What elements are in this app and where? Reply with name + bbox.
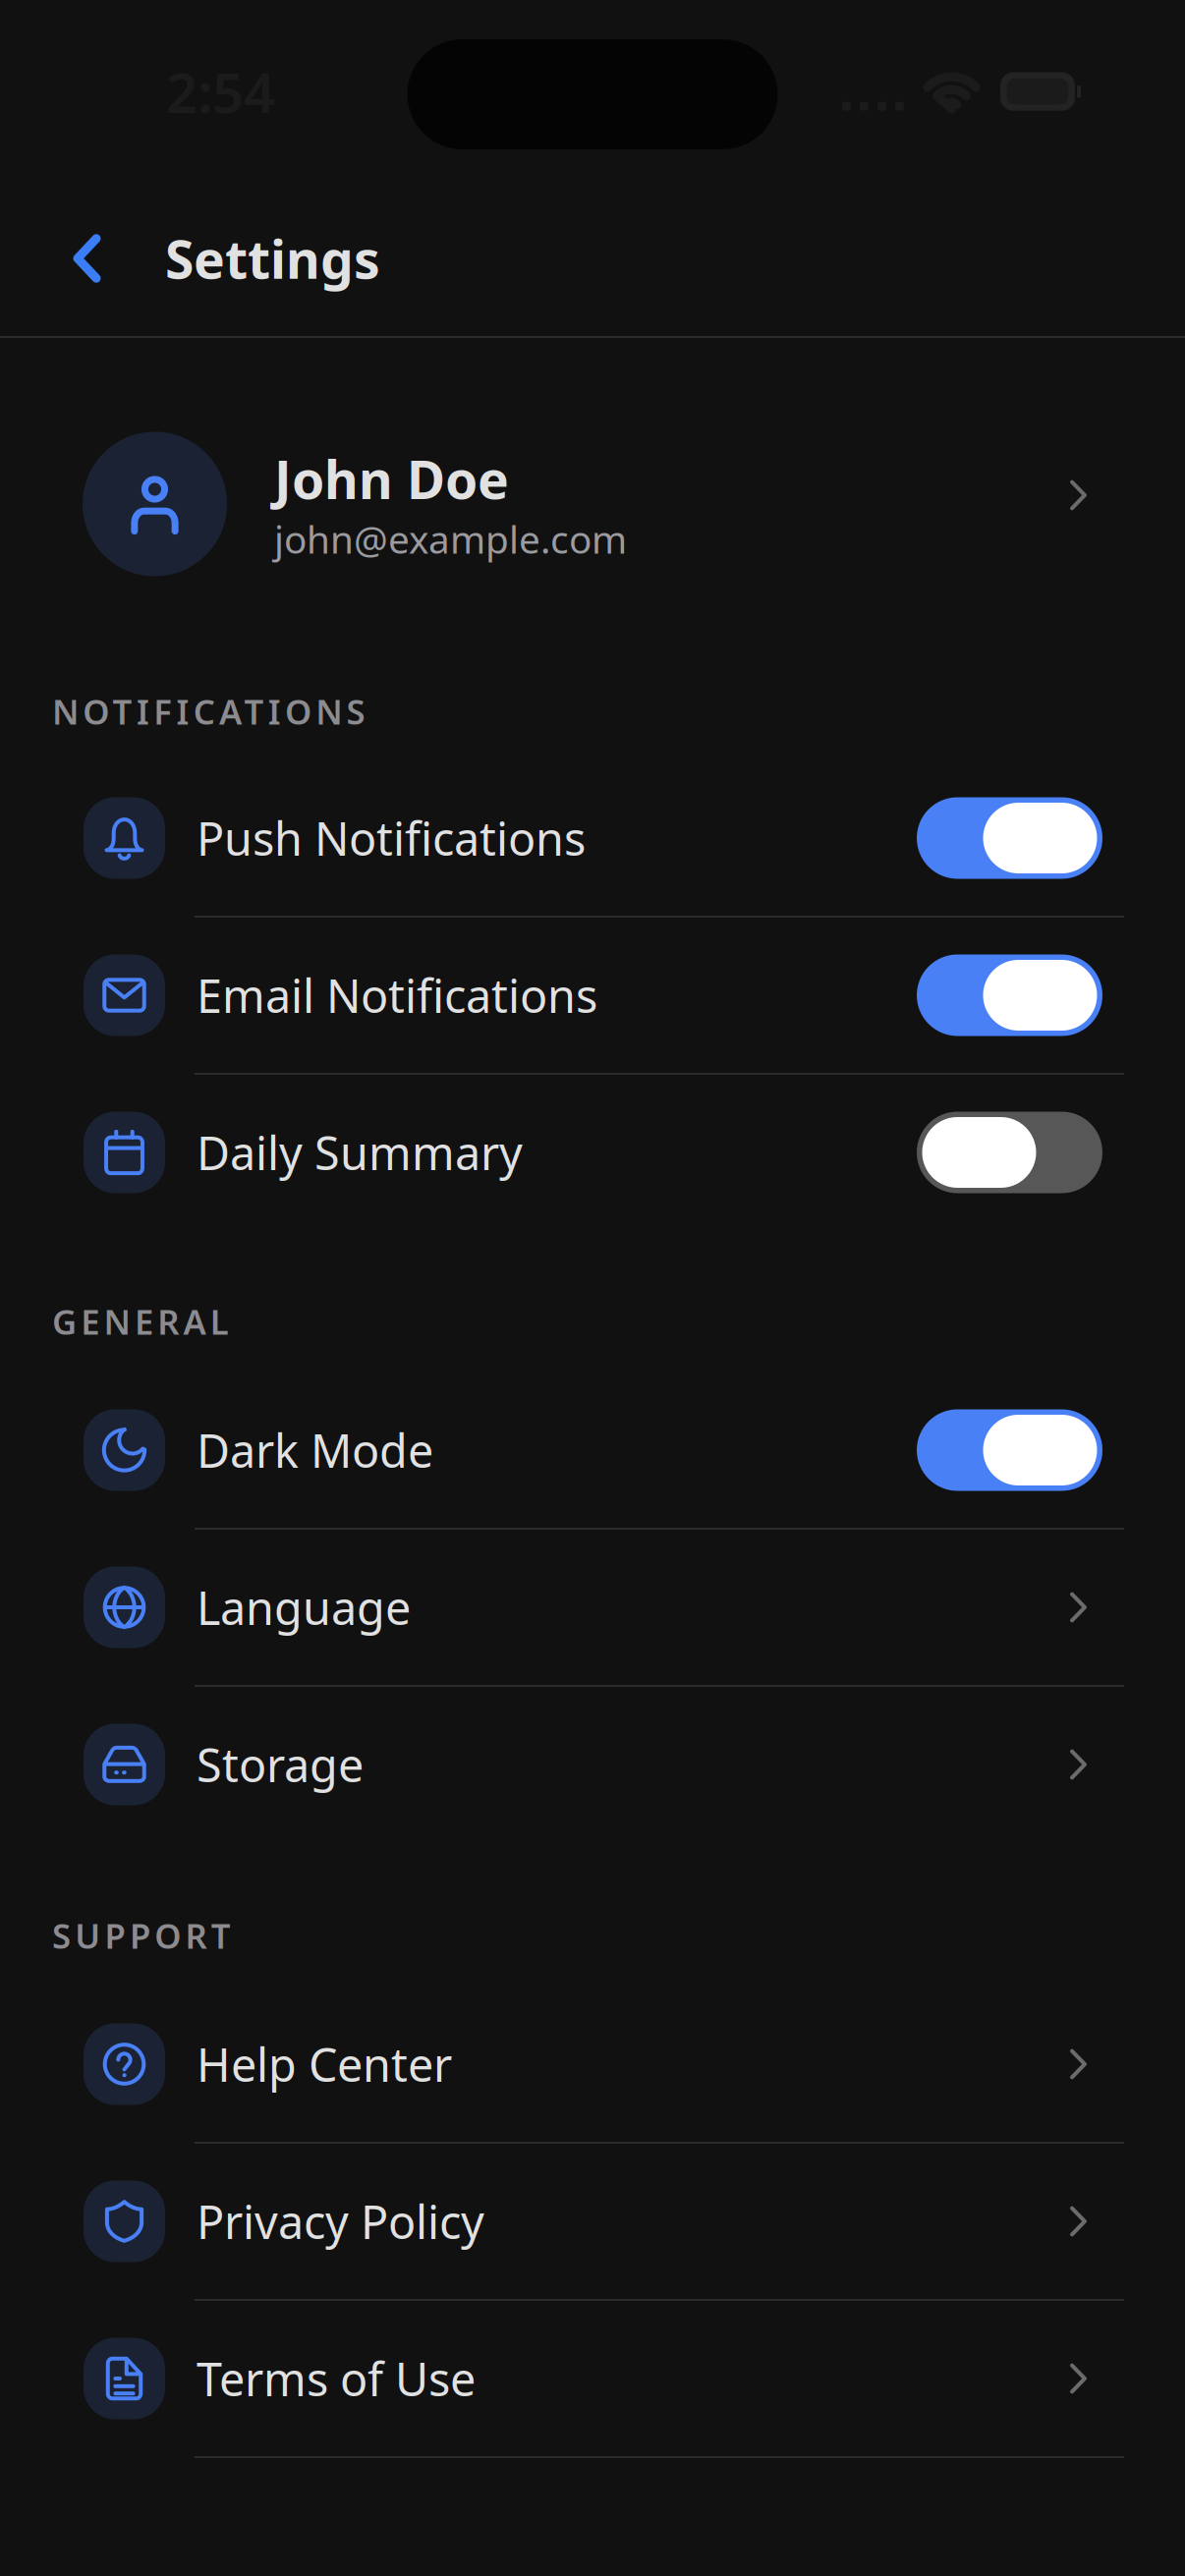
- button[interactable]: Storage: [0, 1687, 1185, 1842]
- staticText: Terms of Use: [197, 2348, 476, 2409]
- staticText: Help Center: [197, 2034, 452, 2095]
- button[interactable]: Privacy Policy: [0, 2144, 1185, 2299]
- button[interactable]: Daily Summary: [0, 1075, 1185, 1230]
- button[interactable]: Back: [0, 175, 165, 310]
- staticText: GENERAL: [52, 1299, 229, 1344]
- staticText: Storage: [197, 1734, 364, 1795]
- staticText: Push Notifications: [197, 808, 586, 868]
- button[interactable]: Email Notifications: [0, 918, 1185, 1073]
- staticText: Dark Mode: [197, 1420, 433, 1481]
- button[interactable]: Help Center: [0, 1987, 1185, 2142]
- button[interactable]: Language: [0, 1530, 1185, 1685]
- button[interactable]: John Doe: [0, 338, 1185, 652]
- staticText: John Doe: [274, 444, 509, 514]
- staticText: Language: [197, 1577, 411, 1638]
- button[interactable]: Terms of Use: [0, 2301, 1185, 2456]
- staticText: 2:54: [166, 55, 275, 128]
- staticText: Settings: [165, 224, 380, 293]
- staticText: NOTIFICATIONS: [52, 689, 365, 734]
- staticText: Email Notifications: [197, 965, 597, 1026]
- button[interactable]: Dark Mode: [0, 1372, 1185, 1528]
- button[interactable]: Push Notifications: [0, 760, 1185, 916]
- staticText: SUPPORT: [52, 1913, 231, 1958]
- staticText: john@example.com: [274, 514, 627, 564]
- staticText: Privacy Policy: [197, 2191, 484, 2252]
- staticText: Daily Summary: [197, 1122, 523, 1183]
